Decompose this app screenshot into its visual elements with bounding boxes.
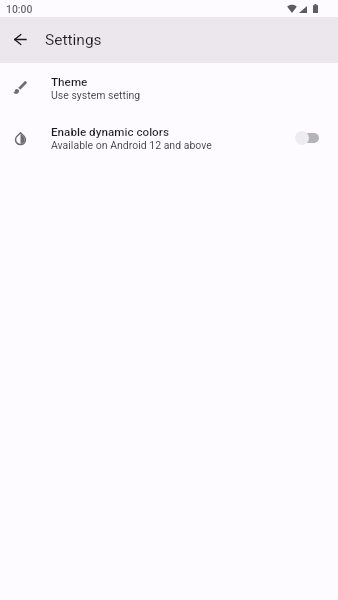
staticText: Available on Android 12 and above bbox=[51, 139, 212, 151]
button[interactable]: Enable dynamic colors bbox=[295, 130, 319, 146]
button[interactable]: Back bbox=[2, 21, 38, 57]
staticText: Use system setting bbox=[51, 89, 141, 101]
staticText: Theme bbox=[51, 75, 88, 89]
staticText: 10:00 bbox=[6, 3, 33, 15]
staticText: Enable dynamic colors bbox=[51, 125, 169, 139]
staticText: Settings bbox=[45, 31, 102, 49]
button[interactable]: Theme bbox=[0, 63, 338, 113]
button[interactable]: Enable dynamic colors bbox=[0, 113, 338, 163]
